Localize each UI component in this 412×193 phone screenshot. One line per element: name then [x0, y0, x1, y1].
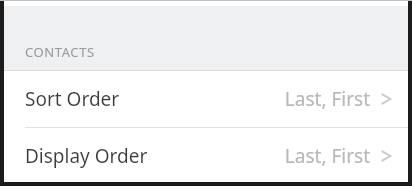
staticText: Last, First [284, 143, 370, 169]
staticText: Display Order [25, 143, 148, 169]
staticText: Sort Order [25, 86, 120, 112]
staticText: CONTACTS [25, 43, 95, 61]
staticText: Last, First [284, 86, 370, 112]
other: Open [381, 90, 392, 108]
button[interactable]: Sort Order [4, 71, 408, 127]
other: Open [381, 147, 392, 165]
button[interactable]: Display Order [4, 128, 408, 183]
